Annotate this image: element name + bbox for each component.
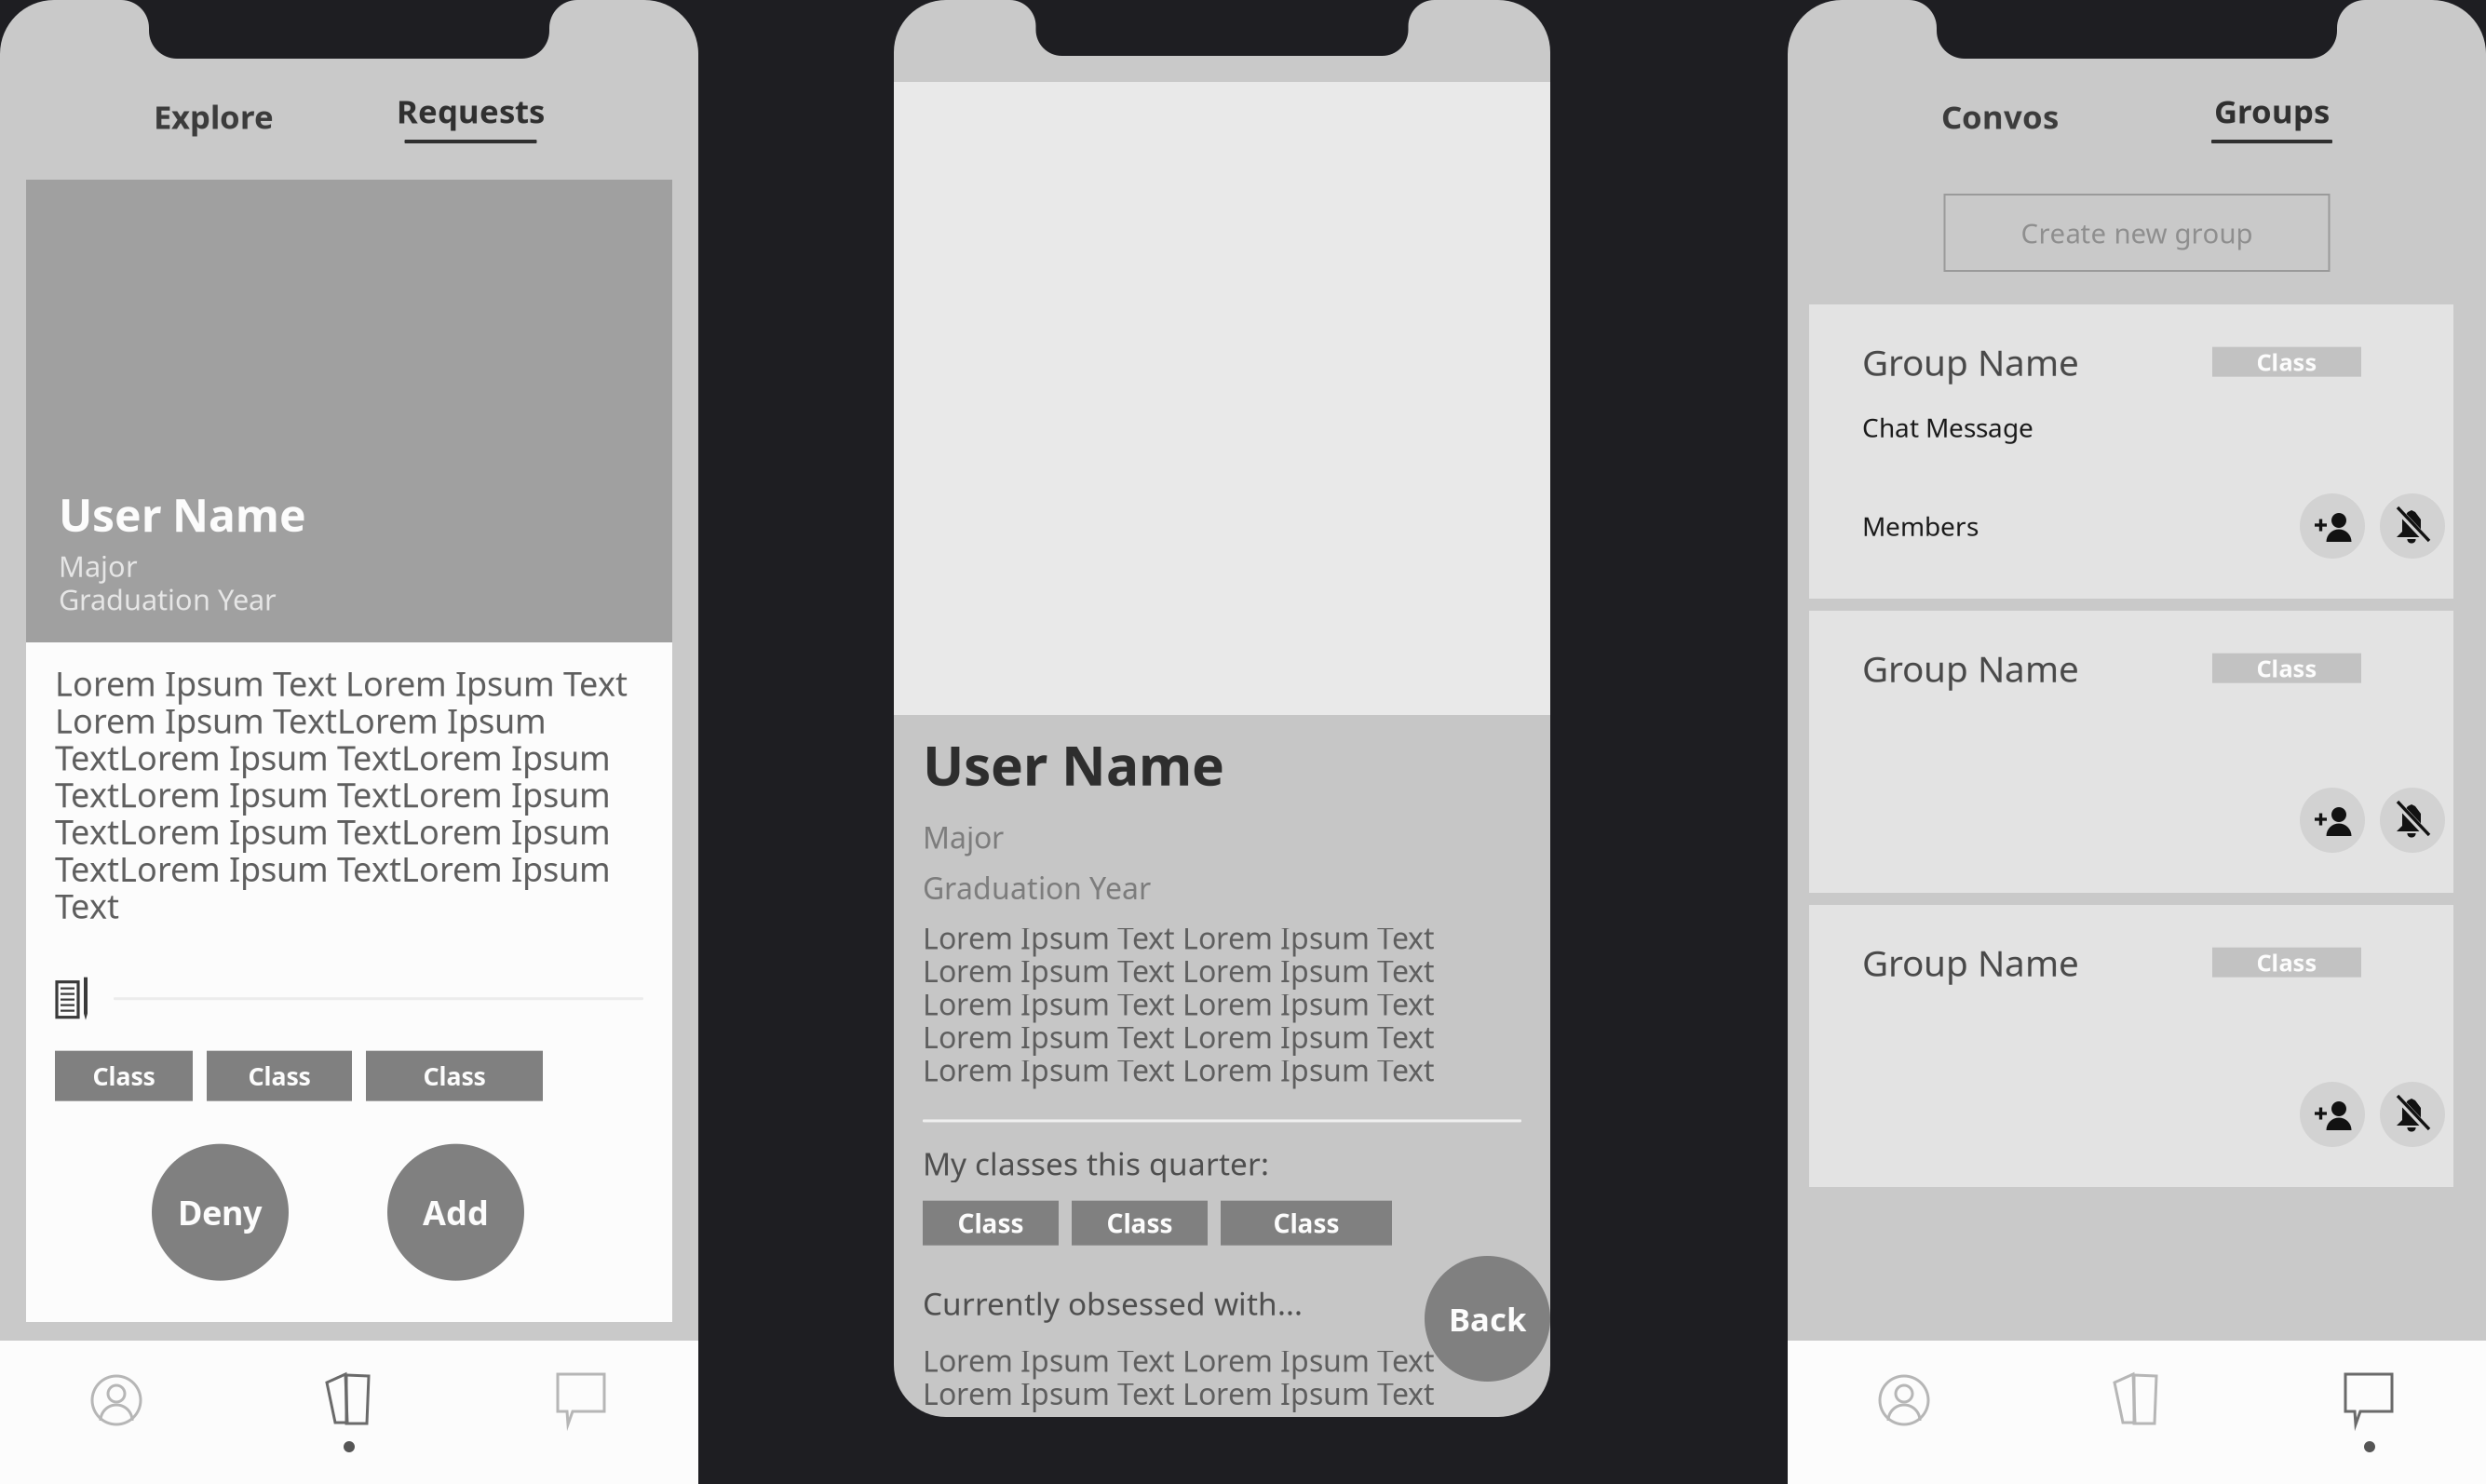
button[interactable]: Mute notifications xyxy=(2380,788,2445,853)
staticText: Graduation Year xyxy=(923,868,1151,908)
staticText: Lorem Ipsum Text Lorem Ipsum Text xyxy=(55,661,628,706)
staticText: Lorem Ipsum Text Lorem Ipsum Text xyxy=(923,1341,1435,1380)
button[interactable]: Group Name xyxy=(1809,304,2453,599)
staticText: Members xyxy=(1862,509,1979,543)
staticText: Lorem Ipsum Text Lorem Ipsum Text xyxy=(923,918,1435,957)
button[interactable]: Back xyxy=(1425,1256,1550,1382)
staticText: Lorem Ipsum Text Lorem Ipsum Text xyxy=(923,1050,1435,1090)
staticText: Deny xyxy=(178,1190,263,1234)
button[interactable]: Add xyxy=(387,1144,524,1281)
button[interactable]: Add member xyxy=(2300,493,2365,559)
staticText: Class xyxy=(2256,947,2317,978)
staticText: My classes this quarter: xyxy=(923,1143,1269,1184)
button[interactable]: Mute notifications xyxy=(2380,493,2445,559)
button[interactable]: Group Name xyxy=(1809,611,2453,893)
staticText: Class xyxy=(248,1059,311,1092)
staticText: Group Name xyxy=(1862,644,2079,692)
button[interactable]: Messages xyxy=(2253,1360,2486,1464)
button[interactable]: Groups xyxy=(2211,88,2332,145)
staticText: TextLorem Ipsum TextLorem Ipsum xyxy=(55,772,611,817)
staticText: Class xyxy=(2256,346,2317,378)
staticText: Class xyxy=(2256,653,2317,684)
staticText: Text xyxy=(55,883,119,928)
staticText: Requests xyxy=(397,89,545,132)
staticText: Lorem Ipsum Text Lorem Ipsum Text xyxy=(923,1374,1435,1413)
staticText: TextLorem Ipsum TextLorem Ipsum xyxy=(55,809,611,854)
button[interactable]: Explore xyxy=(2020,1360,2253,1464)
staticText: Lorem Ipsum TextLorem Ipsum xyxy=(55,698,547,743)
button[interactable]: Deny xyxy=(152,1144,289,1281)
staticText: Class xyxy=(1107,1206,1173,1240)
button[interactable]: Class xyxy=(366,1051,543,1101)
button[interactable]: Requests xyxy=(397,88,545,145)
staticText: Class xyxy=(958,1206,1024,1240)
button[interactable]: Convos xyxy=(1941,89,2059,143)
staticText: Class xyxy=(1273,1206,1339,1240)
staticText: Lorem Ipsum Text Lorem Ipsum Text xyxy=(923,1017,1435,1057)
button[interactable]: Add member xyxy=(2300,788,2365,853)
staticText: Groups xyxy=(2214,89,2330,132)
staticText: Create new group xyxy=(2021,215,2253,251)
button[interactable]: Mute notifications xyxy=(2380,1082,2445,1147)
staticText: Group Name xyxy=(1862,338,2079,386)
button[interactable]: Explore xyxy=(154,89,274,143)
staticText: Lorem Ipsum Text Lorem Ipsum Text xyxy=(923,984,1435,1024)
button[interactable]: Create new group xyxy=(1945,195,2329,271)
staticText: Group Name xyxy=(1862,938,2079,986)
staticText: User Name xyxy=(923,728,1224,801)
button[interactable]: Add member xyxy=(2300,1082,2365,1147)
staticText: Explore xyxy=(154,95,274,138)
button[interactable]: Class xyxy=(207,1051,352,1101)
button[interactable]: Explore xyxy=(233,1360,466,1464)
staticText: Chat Message xyxy=(1862,410,2033,445)
staticText: Major xyxy=(59,547,138,585)
staticText: TextLorem Ipsum TextLorem Ipsum xyxy=(55,846,611,891)
staticText: Lorem Ipsum Text Lorem Ipsum Text xyxy=(923,951,1435,990)
button[interactable]: Class xyxy=(923,1201,1059,1245)
button[interactable]: Group Name xyxy=(1809,905,2453,1187)
button[interactable]: Class xyxy=(55,1051,193,1101)
staticText: User Name xyxy=(59,485,306,544)
staticText: TextLorem Ipsum TextLorem Ipsum xyxy=(55,735,611,780)
staticText: Class xyxy=(423,1059,486,1092)
staticText: Graduation Year xyxy=(59,580,277,618)
button[interactable]: Class xyxy=(1072,1201,1208,1245)
button[interactable]: Profile xyxy=(0,1360,233,1464)
staticText: Back xyxy=(1449,1297,1526,1340)
button[interactable]: Messages xyxy=(466,1360,698,1464)
staticText: Add xyxy=(423,1190,489,1234)
button[interactable]: Profile xyxy=(1788,1360,2020,1464)
staticText: Currently obsessed with... xyxy=(923,1283,1303,1324)
staticText: Major xyxy=(923,817,1004,857)
staticText: Convos xyxy=(1941,95,2059,138)
staticText: Class xyxy=(93,1059,155,1092)
button[interactable]: Class xyxy=(1221,1201,1392,1245)
